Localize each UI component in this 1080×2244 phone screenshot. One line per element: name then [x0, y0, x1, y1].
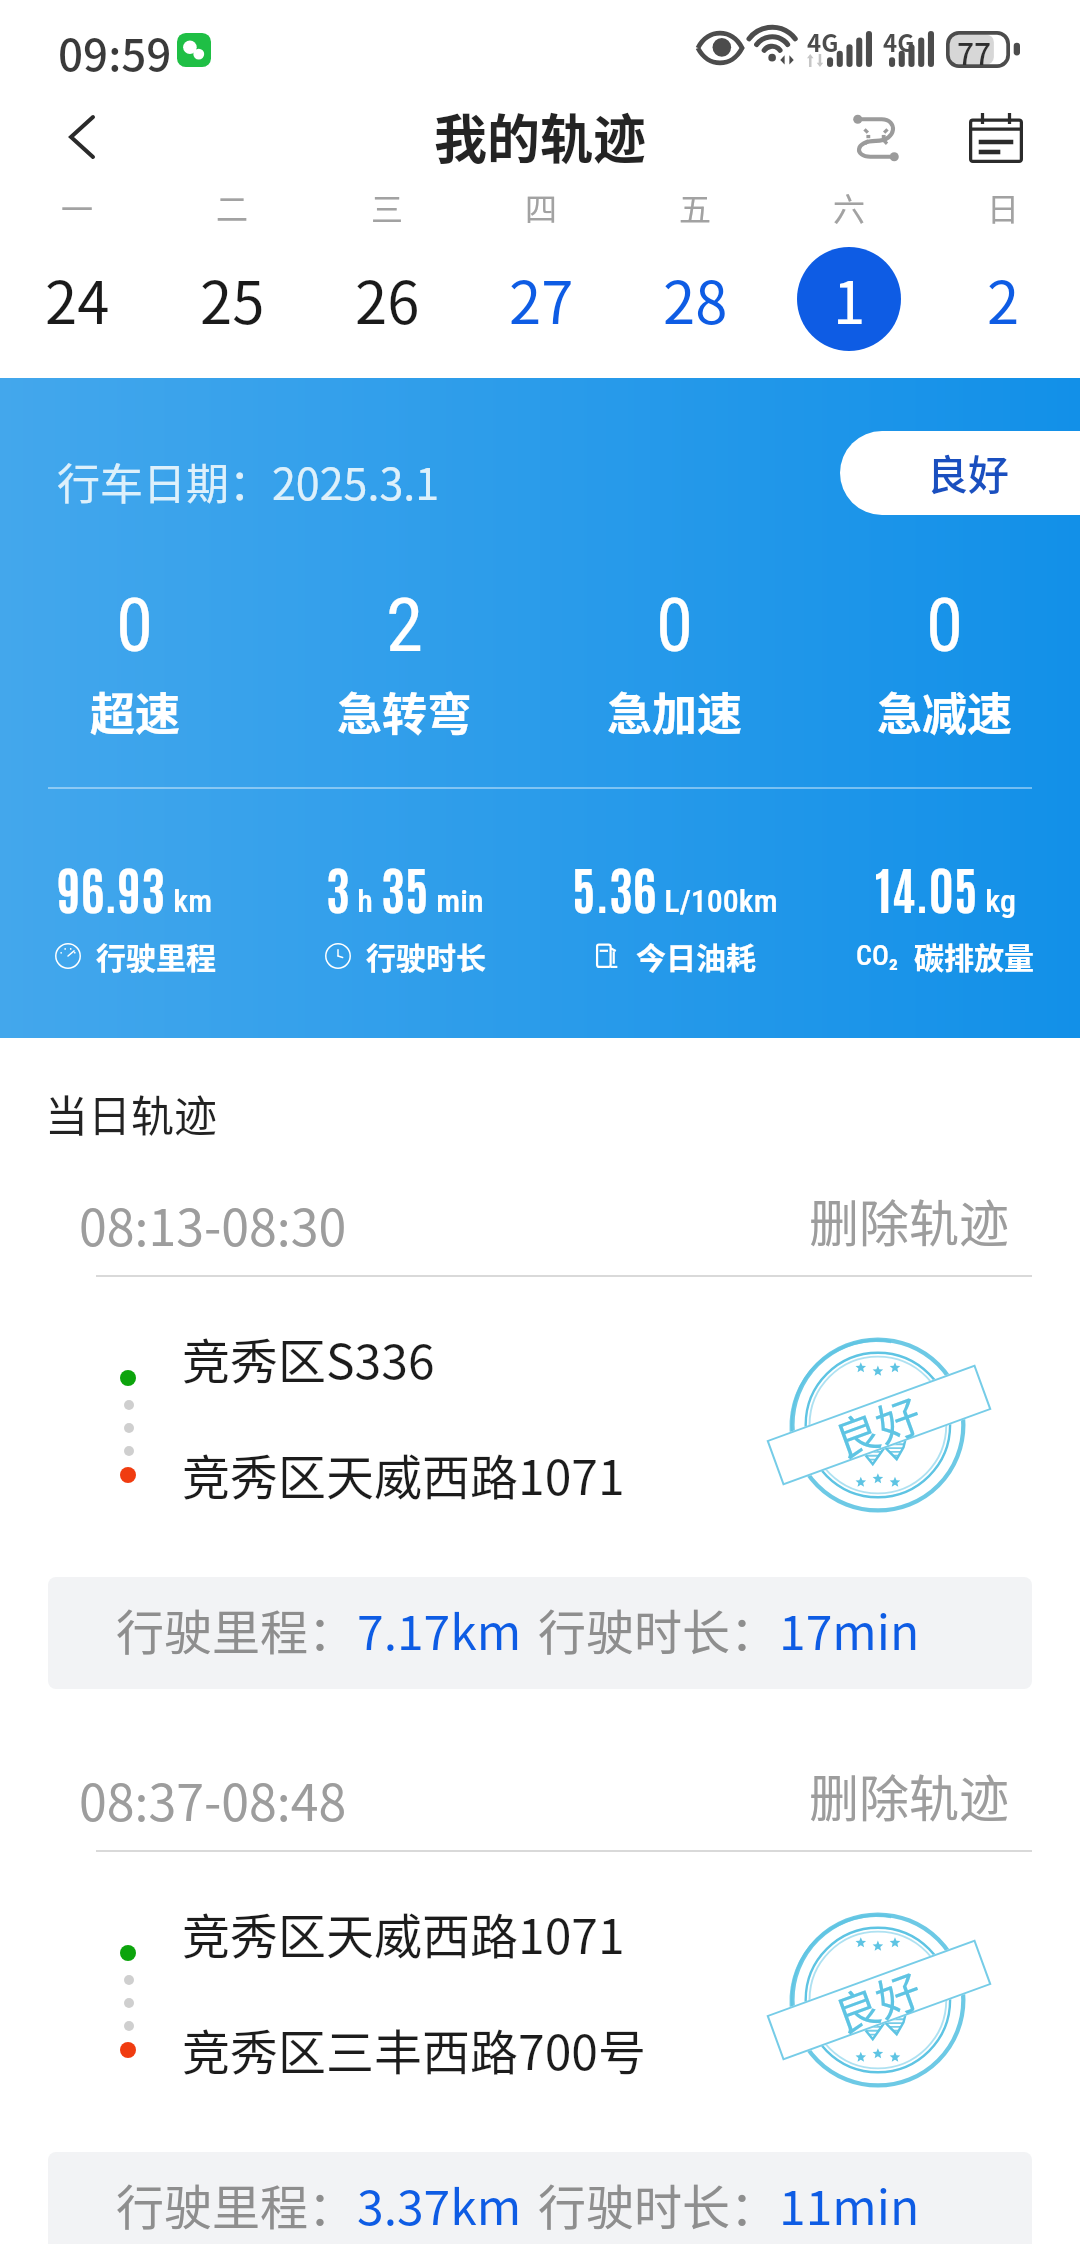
button[interactable]: 删除轨迹 [790, 1184, 1020, 1256]
staticText: 一 [61, 184, 94, 228]
staticText: 11min [779, 2169, 920, 2239]
button[interactable]: 1 [772, 246, 926, 351]
staticText: 竞秀区S336 [182, 1323, 435, 1393]
staticText: 行驶时长： [538, 2169, 779, 2239]
staticText: 28 [663, 257, 728, 341]
staticText: 35 [381, 854, 429, 920]
staticText: 17min [779, 1594, 920, 1664]
staticText: 09:59 [58, 20, 172, 84]
staticText: 27 [509, 257, 574, 341]
button[interactable]: 删除轨迹 [790, 1759, 1020, 1831]
staticText: 7.17km [357, 1594, 522, 1664]
staticText: 良好 [825, 1381, 929, 1471]
staticText: 良好 [825, 1956, 929, 2046]
staticText: min [429, 882, 484, 920]
staticText: 行驶里程 [96, 934, 216, 977]
staticText: 急加速 [607, 679, 743, 744]
staticText: 行驶时长： [538, 1594, 779, 1664]
staticText: 六 [833, 184, 866, 228]
staticText: 急转弯 [337, 679, 473, 744]
staticText: 24 [45, 257, 110, 341]
staticText: 14.05 [875, 854, 978, 920]
staticText: 四 [525, 184, 558, 228]
staticText: 行车日期：2025.3.1 [57, 450, 440, 512]
button[interactable]: 27 [464, 246, 618, 351]
staticText: 良好 [927, 442, 1009, 501]
staticText: 0 [656, 581, 694, 669]
staticText: 0 [926, 581, 964, 669]
button[interactable]: Calendar [956, 98, 1036, 178]
staticText: 25 [200, 257, 265, 341]
button[interactable]: Back [45, 99, 121, 175]
staticText: km [166, 882, 213, 920]
staticText: 超速 [90, 679, 181, 744]
button[interactable]: 26 [310, 246, 464, 351]
staticText: 4G [883, 24, 915, 59]
staticText: 行驶里程： [116, 2169, 357, 2239]
staticText: 1 [833, 257, 866, 341]
staticText: CO₂ [856, 939, 899, 972]
button[interactable]: 28 [618, 246, 772, 351]
staticText: 当日轨迹 [45, 1082, 217, 1144]
staticText: 96.93 [57, 854, 166, 920]
staticText: 我的轨迹 [0, 98, 1080, 175]
staticText: 竞秀区天威西路1071 [182, 1898, 625, 1968]
staticText: 26 [355, 257, 420, 341]
staticText: 竞秀区三丰西路700号 [182, 2014, 646, 2084]
staticText: kg [978, 882, 1016, 920]
button[interactable]: 2 [926, 246, 1080, 351]
button[interactable]: 良好 [840, 431, 1080, 515]
staticText: 3.37km [357, 2169, 522, 2239]
staticText: 删除轨迹 [809, 1759, 1009, 1831]
staticText: 竞秀区天威西路1071 [182, 1439, 625, 1509]
staticText: 2 [386, 581, 424, 669]
staticText: 3 [326, 854, 350, 920]
button[interactable]: 24 [0, 246, 155, 351]
staticText: 五 [679, 184, 712, 228]
staticText: 77 [957, 30, 992, 67]
staticText: 日 [987, 184, 1020, 228]
staticText: 急减速 [877, 679, 1013, 744]
staticText: 碳排放量 [914, 934, 1034, 977]
staticText: 2 [987, 257, 1020, 341]
button[interactable]: 25 [155, 246, 310, 351]
staticText: 0 [116, 581, 154, 669]
staticText: 删除轨迹 [809, 1184, 1009, 1256]
staticText: 行驶里程： [116, 1594, 357, 1664]
staticText: 5.36 [572, 854, 657, 920]
staticText: 二 [216, 184, 249, 228]
staticText: 4G [807, 24, 839, 59]
staticText: 08:13-08:30 [79, 1188, 347, 1260]
staticText: 08:37-08:48 [79, 1763, 347, 1835]
staticText: 三 [371, 184, 404, 228]
staticText: h [350, 882, 381, 920]
staticText: 行驶时长 [366, 934, 486, 977]
button[interactable]: Route [836, 98, 916, 178]
staticText: 今日油耗 [636, 934, 756, 977]
staticText: L/100km [657, 882, 778, 920]
